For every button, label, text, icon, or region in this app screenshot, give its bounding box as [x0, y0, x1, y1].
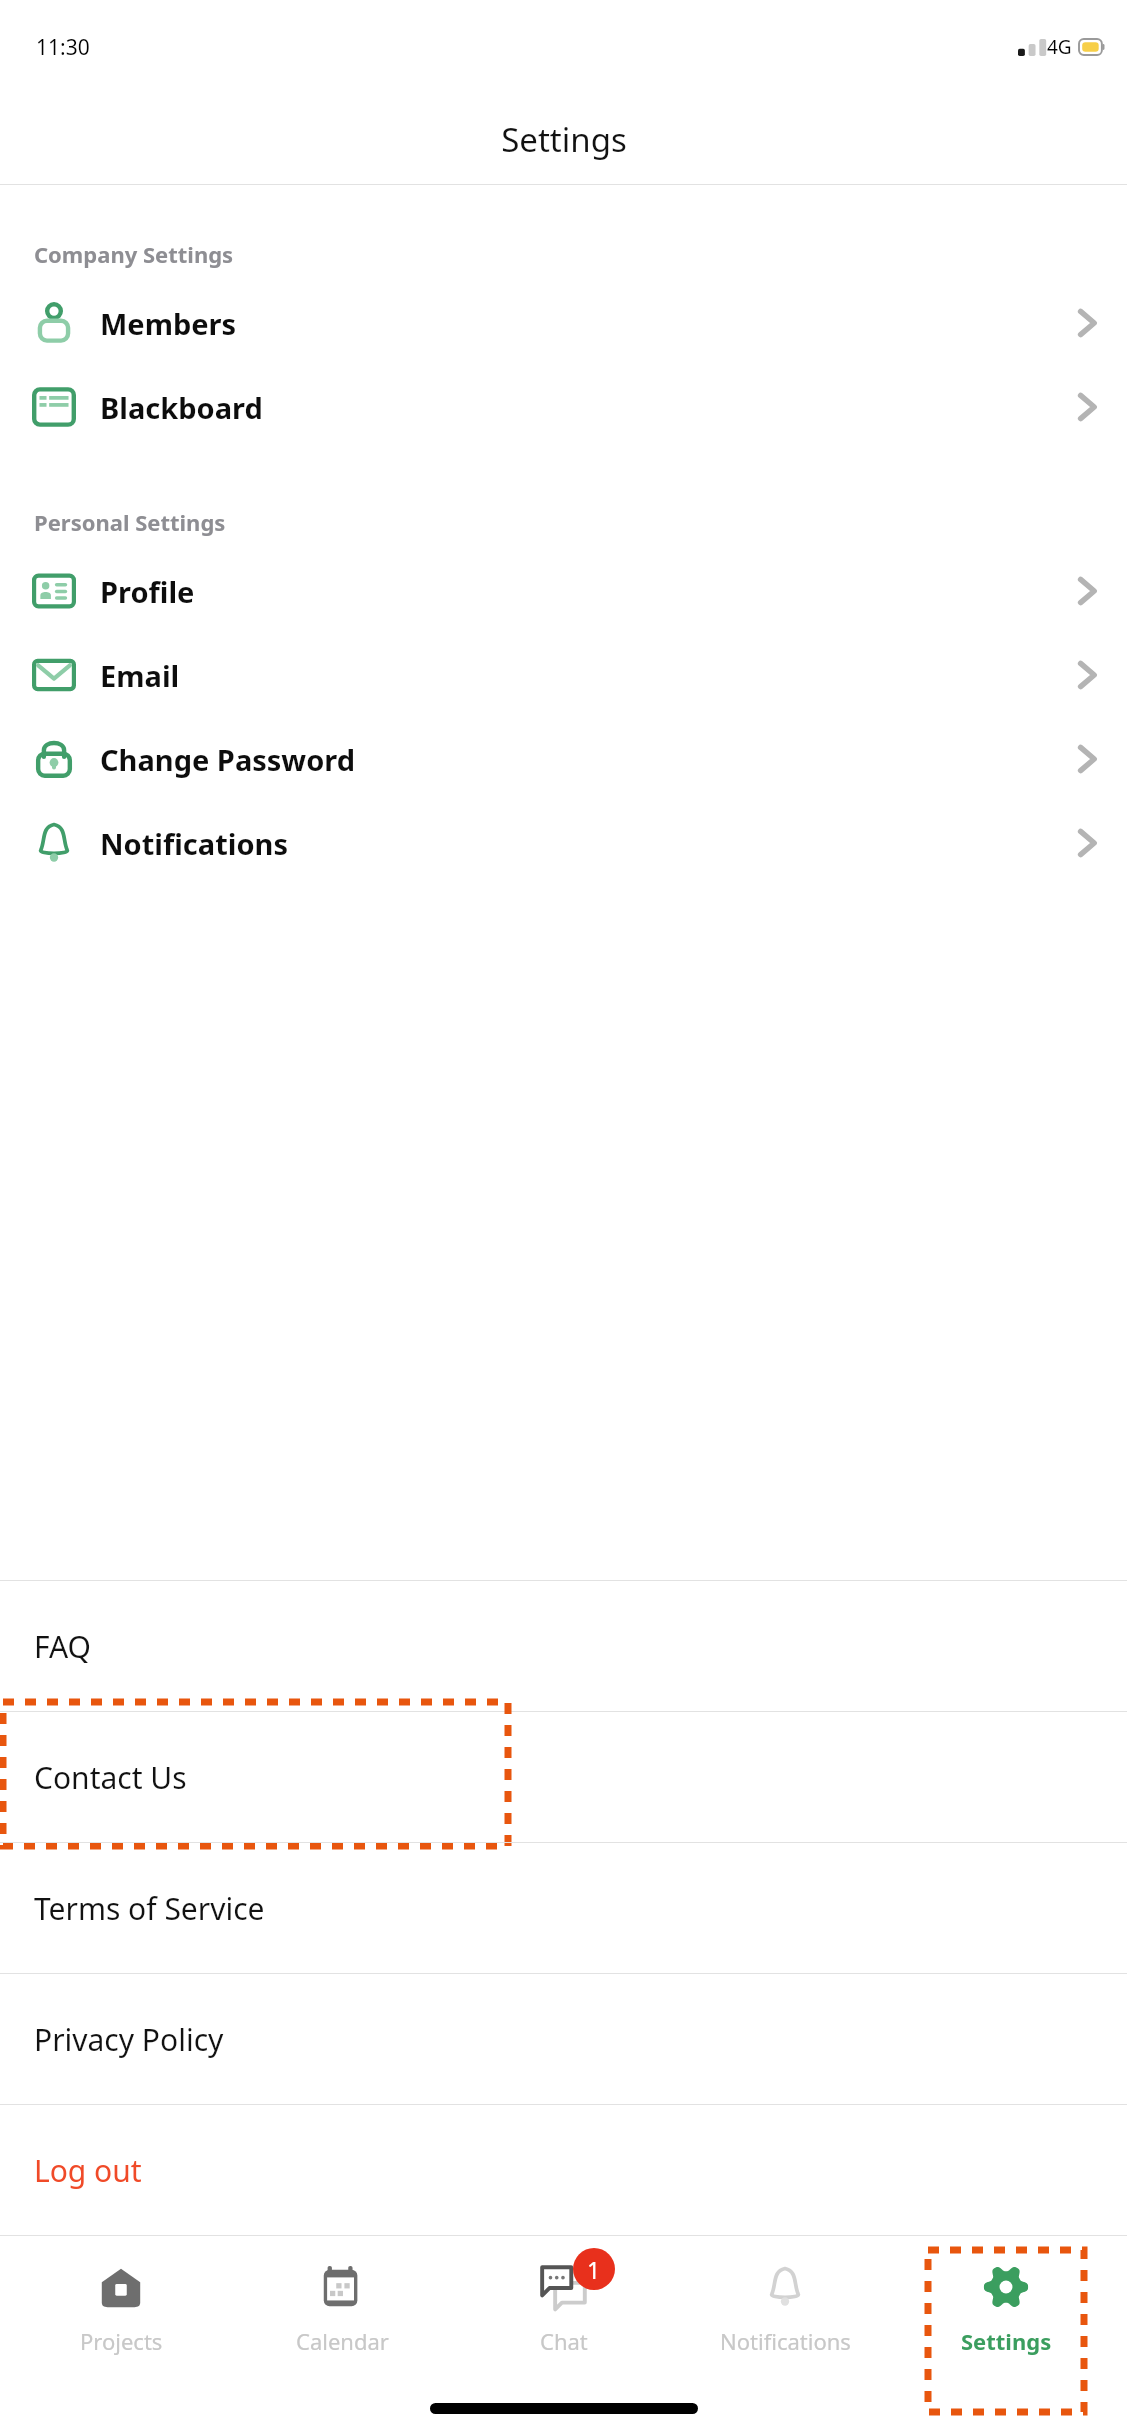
staticText: 11:30 — [36, 33, 90, 62]
staticText: Chat — [540, 2326, 588, 2356]
other: Projects — [97, 2263, 145, 2311]
staticText: 4G — [1047, 34, 1072, 60]
staticText: Profile — [100, 572, 195, 611]
staticText: Change Password — [100, 740, 356, 779]
button[interactable]: Chat — [464, 2236, 664, 2386]
button[interactable]: Email — [0, 633, 1127, 717]
button[interactable]: FAQ — [0, 1581, 1127, 1711]
staticText: Terms of Service — [34, 1888, 265, 1929]
button[interactable]: Profile — [0, 549, 1127, 633]
other: Notifications — [763, 2265, 807, 2309]
button[interactable]: Projects — [21, 2236, 221, 2386]
button[interactable]: Settings — [906, 2236, 1106, 2386]
staticText: FAQ — [34, 1626, 91, 1667]
staticText: Blackboard — [100, 388, 263, 427]
button[interactable]: Terms of Service — [0, 1843, 1127, 1973]
other: Chat — [538, 2261, 590, 2313]
staticText: Privacy Policy — [34, 2019, 224, 2060]
staticText: Calendar — [296, 2326, 389, 2356]
staticText: Members — [100, 304, 237, 343]
button[interactable]: Blackboard — [0, 365, 1127, 449]
other: Calendar — [318, 2263, 366, 2311]
button[interactable]: Notifications — [0, 801, 1127, 885]
staticText: Settings — [961, 2326, 1052, 2356]
staticText: Log out — [34, 2150, 142, 2191]
button[interactable]: Change Password — [0, 717, 1127, 801]
staticText: Settings — [501, 117, 627, 162]
staticText: Contact Us — [34, 1757, 187, 1798]
staticText: Notifications — [720, 2326, 851, 2356]
button[interactable]: Members — [0, 281, 1127, 365]
staticText: Company Settings — [34, 239, 234, 269]
button[interactable]: Calendar — [242, 2236, 442, 2386]
button[interactable]: Notifications — [685, 2236, 885, 2386]
staticText: 1 — [587, 2254, 601, 2285]
button[interactable]: Privacy Policy — [0, 1974, 1127, 2104]
staticText: Personal Settings — [34, 507, 226, 537]
button[interactable]: Contact Us — [0, 1712, 1127, 1842]
staticText: Projects — [80, 2326, 163, 2356]
button[interactable]: Log out — [0, 2105, 1127, 2235]
staticText: Email — [100, 656, 180, 695]
other: Settings — [982, 2263, 1030, 2311]
staticText: Notifications — [100, 824, 288, 863]
